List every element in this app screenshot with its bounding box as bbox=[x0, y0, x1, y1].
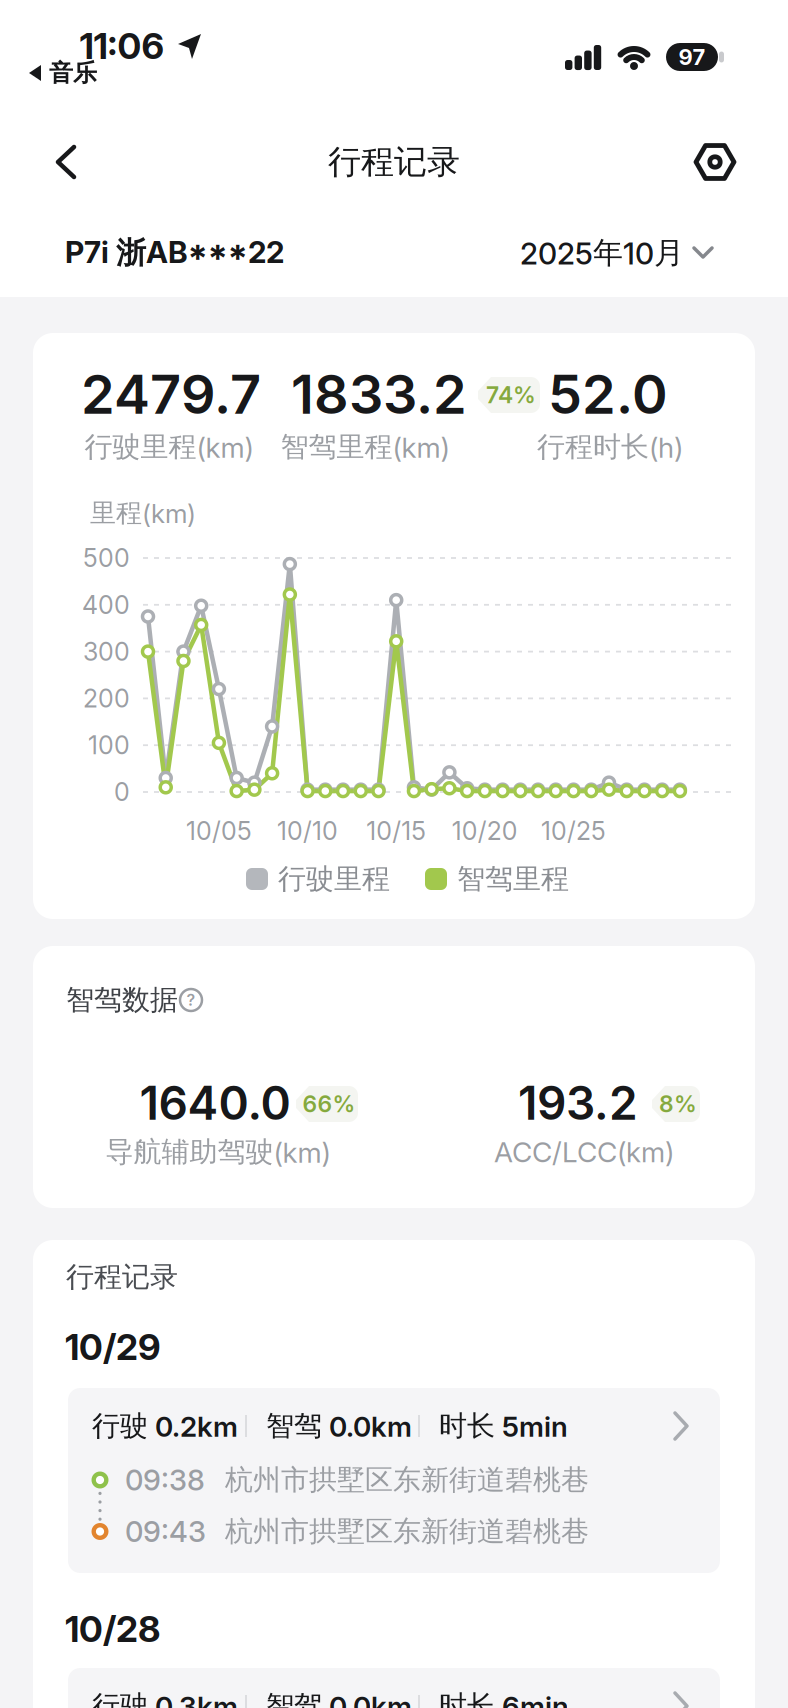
staticText: 时长 6min bbox=[439, 1688, 569, 1708]
button[interactable]: P7i 浙AB***22 bbox=[65, 231, 365, 275]
staticText: 2025年10月 bbox=[520, 234, 684, 272]
staticText: 11:06 bbox=[79, 24, 164, 68]
staticText: 时长 5min bbox=[439, 1408, 568, 1444]
staticText: 智驾里程(km) bbox=[280, 429, 449, 465]
staticText: 行程记录 bbox=[328, 141, 460, 183]
button[interactable]: 行驶 0.2km bbox=[0, 0, 788, 1708]
staticText: 09:43 bbox=[125, 1514, 206, 1549]
staticText: 400 bbox=[82, 590, 130, 620]
staticText: 52.0 bbox=[548, 361, 668, 427]
staticText: 1833.2 bbox=[291, 361, 467, 427]
staticText: 10/29 bbox=[65, 1325, 161, 1369]
staticText: 行驶里程(km) bbox=[84, 429, 253, 465]
staticText: 97 bbox=[678, 44, 705, 70]
staticText: 10/15 bbox=[366, 816, 426, 846]
staticText: 66% bbox=[302, 1090, 355, 1118]
staticText: 8% bbox=[659, 1090, 697, 1118]
staticText: 200 bbox=[83, 683, 130, 713]
staticText: ACC/LCC(km) bbox=[494, 1135, 674, 1169]
staticText: 行驶 0.3km bbox=[92, 1688, 238, 1708]
staticText: 杭州市拱墅区东新街道碧桃巷 bbox=[225, 1462, 589, 1498]
staticText: 74% bbox=[486, 381, 536, 409]
button[interactable]: 智驾数据说明 bbox=[175, 984, 207, 1016]
button[interactable]: 选择月份 bbox=[520, 231, 714, 275]
staticText: 09:38 bbox=[125, 1462, 205, 1498]
staticText: 10/25 bbox=[541, 816, 606, 846]
staticText: 音乐 bbox=[49, 58, 97, 88]
staticText: P7i 浙AB***22 bbox=[65, 234, 284, 272]
staticText: 10/28 bbox=[65, 1607, 160, 1651]
staticText: 300 bbox=[83, 636, 130, 667]
staticText: 行程记录 bbox=[66, 1259, 178, 1295]
staticText: 10/05 bbox=[186, 816, 252, 846]
button[interactable]: 设置 bbox=[693, 140, 737, 184]
staticText: 里程(km) bbox=[90, 497, 196, 529]
staticText: 2479.7 bbox=[81, 361, 261, 427]
staticText: 智驾 0.0km bbox=[266, 1408, 412, 1444]
button[interactable]: 行驶 0.3km bbox=[0, 0, 788, 1708]
staticText: 10/10 bbox=[277, 816, 338, 846]
button[interactable]: 返回 bbox=[44, 140, 88, 184]
staticText: 10/20 bbox=[452, 816, 518, 846]
staticText: 智驾 0.0km bbox=[266, 1688, 412, 1708]
staticText: 100 bbox=[88, 730, 130, 760]
button[interactable]: 返回音乐 bbox=[17, 58, 107, 88]
staticText: ? bbox=[186, 990, 195, 1010]
staticText: 1640.0 bbox=[139, 1075, 290, 1131]
staticText: 行程时长(h) bbox=[537, 429, 683, 465]
staticText: 行驶 0.2km bbox=[92, 1408, 238, 1444]
staticText: 0 bbox=[114, 777, 130, 807]
staticText: 500 bbox=[83, 543, 130, 573]
staticText: 智驾数据 bbox=[66, 982, 178, 1018]
staticText: 行驶里程 bbox=[278, 861, 390, 897]
staticText: 智驾里程 bbox=[457, 861, 569, 897]
staticText: 杭州市拱墅区东新街道碧桃巷 bbox=[225, 1514, 589, 1549]
staticText: 导航辅助驾驶(km) bbox=[105, 1134, 330, 1170]
staticText: 193.2 bbox=[518, 1075, 638, 1131]
